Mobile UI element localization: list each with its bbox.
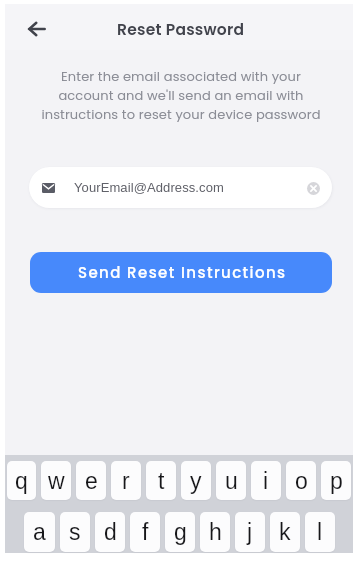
staticText: j bbox=[247, 519, 253, 545]
staticText: t bbox=[158, 468, 165, 494]
staticText: i bbox=[263, 468, 269, 494]
button[interactable]: YourEmail@Address.com bbox=[29, 167, 332, 208]
button[interactable]: u bbox=[216, 461, 246, 500]
staticText: e bbox=[85, 468, 98, 494]
button[interactable]: r bbox=[111, 461, 141, 500]
button[interactable]: k bbox=[270, 512, 300, 552]
staticText: o bbox=[295, 468, 308, 494]
button[interactable]: w bbox=[41, 461, 71, 500]
staticText: Reset Password bbox=[117, 19, 245, 41]
button[interactable]: t bbox=[146, 461, 176, 500]
button[interactable]: Back bbox=[17, 9, 57, 49]
staticText: k bbox=[279, 519, 291, 545]
button[interactable]: y bbox=[181, 461, 211, 500]
button[interactable]: f bbox=[130, 512, 160, 552]
button[interactable]: g bbox=[165, 512, 195, 552]
staticText: Enter the email associated with your acc… bbox=[7, 67, 355, 123]
button[interactable]: s bbox=[60, 512, 90, 552]
staticText: Send Reset Instructions bbox=[78, 262, 287, 283]
button[interactable]: d bbox=[95, 512, 125, 552]
button[interactable]: h bbox=[200, 512, 230, 552]
button[interactable]: l bbox=[305, 512, 335, 552]
button[interactable]: i bbox=[251, 461, 281, 500]
button[interactable]: a bbox=[24, 512, 55, 552]
staticText: YourEmail@Address.com bbox=[74, 180, 224, 195]
staticText: g bbox=[174, 519, 187, 545]
button[interactable]: q bbox=[7, 461, 36, 500]
staticText: w bbox=[48, 468, 65, 494]
button[interactable]: o bbox=[286, 461, 316, 500]
button[interactable]: e bbox=[76, 461, 106, 500]
button[interactable]: p bbox=[321, 461, 351, 500]
staticText: a bbox=[33, 519, 46, 545]
staticText: p bbox=[330, 468, 343, 494]
staticText: u bbox=[225, 468, 238, 494]
staticText: f bbox=[142, 519, 149, 545]
staticText: h bbox=[209, 519, 222, 545]
staticText: r bbox=[122, 468, 130, 494]
staticText: l bbox=[317, 519, 323, 545]
button[interactable]: Send Reset Instructions bbox=[30, 252, 332, 293]
staticText: s bbox=[69, 519, 81, 545]
button[interactable]: j bbox=[235, 512, 265, 552]
staticText: d bbox=[104, 519, 117, 545]
staticText: y bbox=[190, 468, 202, 494]
staticText: q bbox=[15, 468, 28, 494]
button[interactable]: Clear text bbox=[301, 176, 325, 200]
